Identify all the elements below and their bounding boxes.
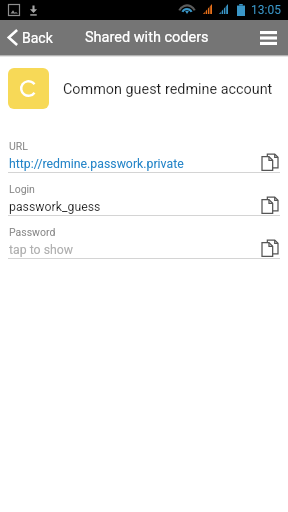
button[interactable]: Password (0, 216, 288, 259)
button[interactable]: Back (0, 29, 61, 46)
button[interactable]: Copy Password (256, 234, 283, 261)
button[interactable]: Menu (246, 20, 288, 55)
staticText: Password (9, 226, 56, 238)
button[interactable]: Login (0, 173, 288, 216)
staticText: passwork_guess (9, 200, 101, 214)
staticText: Login (9, 183, 35, 195)
button[interactable]: URL (0, 130, 288, 173)
staticText: http://redmine.passwork.private (9, 157, 184, 171)
staticText: Common guest redmine account (63, 81, 273, 98)
button[interactable] (8, 68, 49, 109)
button[interactable]: Copy Login (256, 191, 283, 218)
button[interactable]: Copy URL (256, 148, 283, 175)
staticText: 13:05 (251, 3, 281, 17)
staticText: tap to show (9, 243, 74, 257)
staticText: Back (22, 30, 53, 46)
staticText: URL (9, 140, 28, 152)
staticText: Shared with coders (85, 29, 209, 46)
